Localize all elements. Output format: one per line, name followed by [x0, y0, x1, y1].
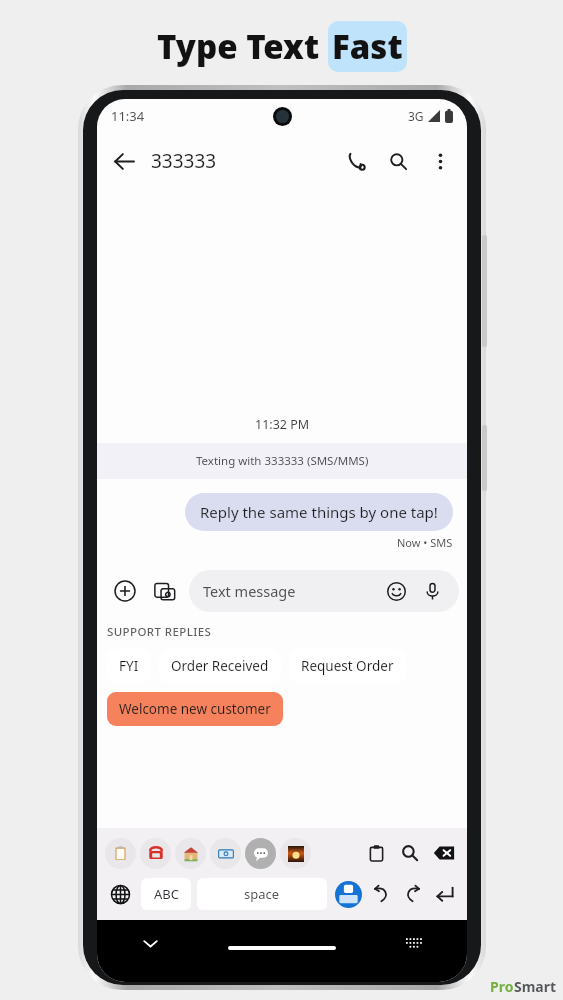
button[interactable]: Emoji category: [280, 838, 311, 869]
button[interactable]: Emoji category: [245, 838, 276, 869]
button[interactable]: Emoji: [383, 578, 409, 604]
staticText: space: [244, 885, 280, 903]
button[interactable]: Reply the same things by one tap!: [185, 493, 453, 531]
staticText: 3G: [408, 108, 424, 124]
staticText: Order Received: [171, 657, 269, 675]
staticText: Text message: [203, 581, 296, 601]
staticText: Reply the same things by one tap!: [200, 502, 438, 522]
button[interactable]: Paste: [359, 836, 393, 870]
button[interactable]: Emoji category: [175, 838, 206, 869]
button[interactable]: space: [197, 878, 327, 910]
button[interactable]: Keyboard app: [333, 879, 363, 909]
staticText: 333333: [151, 148, 217, 174]
staticText: SUPPORT REPLIES: [107, 624, 212, 640]
button[interactable]: Undo: [397, 878, 429, 910]
staticText: Pro: [490, 977, 514, 996]
staticText: Type Text: [157, 24, 328, 69]
staticText: Fast: [332, 24, 403, 69]
staticText: 11:34: [111, 107, 145, 125]
staticText: Now • SMS: [397, 535, 453, 550]
button[interactable]: Search: [377, 140, 419, 182]
button[interactable]: Switch keyboard: [401, 930, 427, 956]
button[interactable]: Call: [335, 140, 377, 182]
button[interactable]: Enter: [429, 878, 461, 910]
button[interactable]: Change language: [103, 877, 137, 911]
staticText: FYI: [119, 657, 139, 675]
button[interactable]: Gallery: [145, 571, 185, 611]
button[interactable]: Request Order: [289, 649, 406, 683]
button[interactable]: Emoji category: [140, 838, 171, 869]
staticText: 11:32 PM: [255, 416, 310, 433]
staticText: Texting with 333333 (SMS/MMS): [196, 453, 369, 469]
button[interactable]: Add attachment: [105, 571, 145, 611]
button[interactable]: Redo: [365, 878, 397, 910]
button[interactable]: Search emoji: [393, 836, 427, 870]
button[interactable]: Hide keyboard: [137, 930, 163, 956]
staticText: Welcome new customer: [119, 700, 271, 718]
staticText: Smart: [514, 977, 557, 996]
button[interactable]: Text message: [189, 570, 459, 612]
button[interactable]: Order Received: [159, 649, 281, 683]
button[interactable]: More options: [419, 140, 461, 182]
button[interactable]: FYI: [107, 649, 151, 683]
button[interactable]: Backspace: [427, 836, 461, 870]
button[interactable]: Back: [103, 140, 145, 182]
button[interactable]: Emoji category: [210, 838, 241, 869]
staticText: Request Order: [301, 657, 394, 675]
staticText: ABC: [154, 885, 179, 903]
button[interactable]: Voice input: [419, 578, 445, 604]
button[interactable]: Welcome new customer: [107, 692, 283, 726]
button[interactable]: ABC: [141, 878, 191, 910]
button[interactable]: Emoji category: [105, 838, 136, 869]
